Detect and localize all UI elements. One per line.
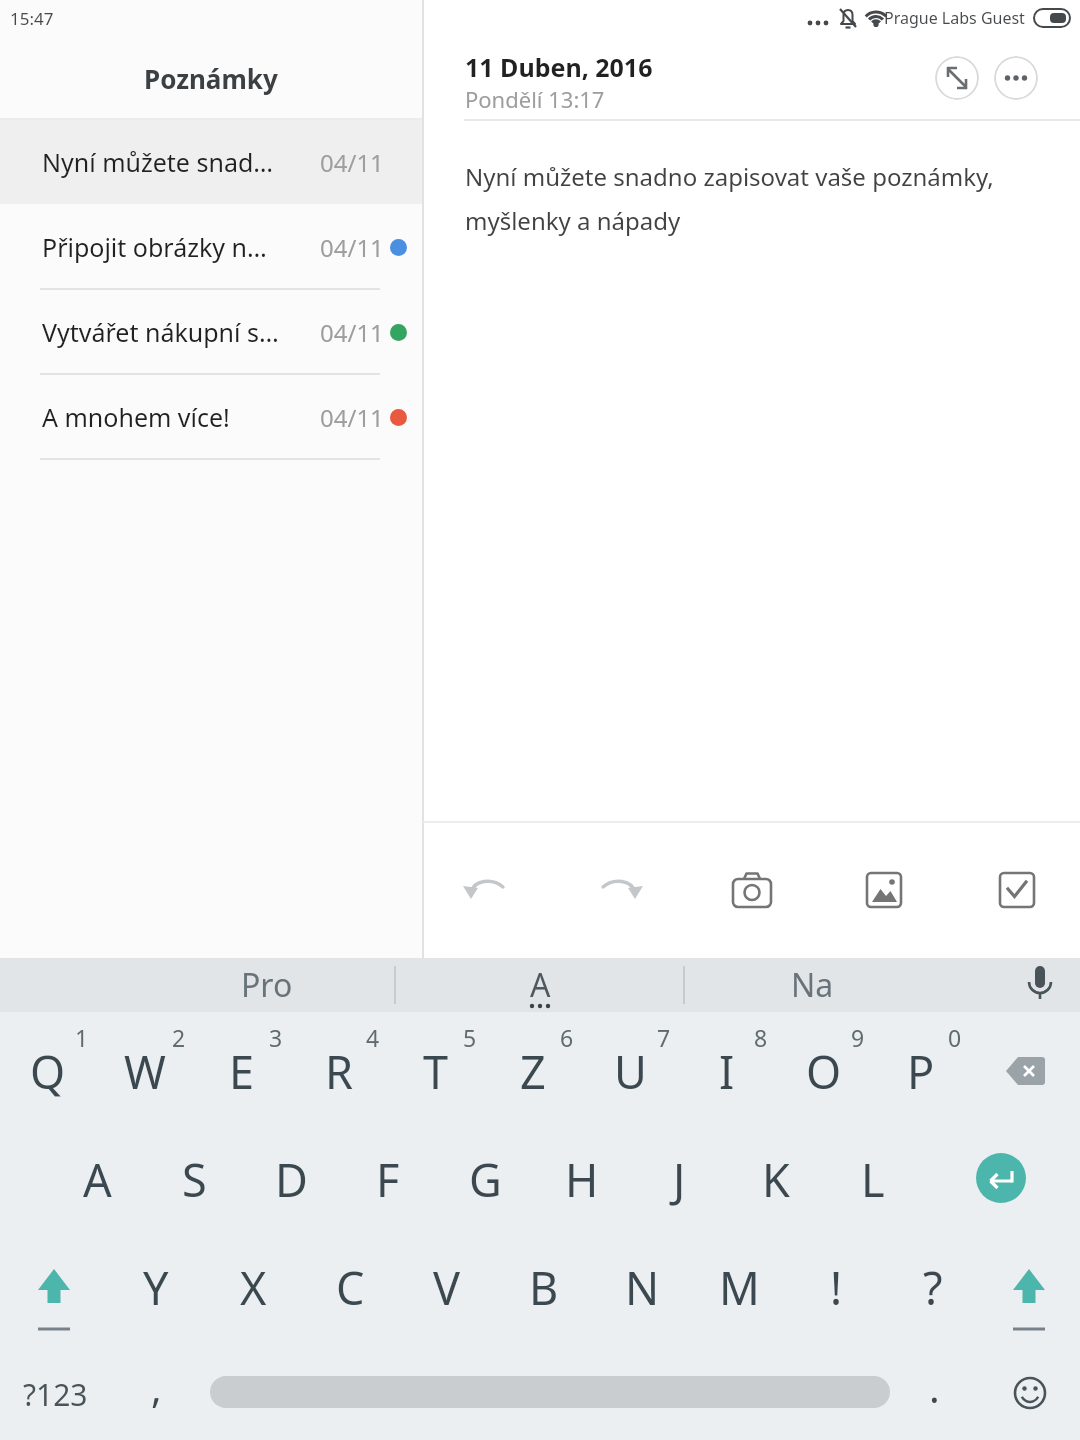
staticText: L — [861, 1149, 885, 1210]
button[interactable] — [984, 857, 1050, 923]
button[interactable]: Y — [108, 1235, 204, 1339]
staticText: 04/11 — [320, 401, 384, 434]
button[interactable]: W — [97, 1019, 193, 1123]
button[interactable]: Nyní můžete snadno zapisovat vaše — [0, 120, 422, 204]
button[interactable]: Na — [725, 962, 899, 1008]
staticText: N — [625, 1257, 660, 1318]
staticText: M — [719, 1257, 760, 1318]
staticText: F — [376, 1149, 400, 1210]
staticText: 15:47 — [10, 7, 54, 30]
button[interactable]: E — [194, 1019, 290, 1123]
staticText: A — [83, 1149, 112, 1210]
staticText: 2 — [172, 1022, 186, 1052]
button[interactable]: J — [631, 1127, 727, 1231]
staticText: Vytvářet nákupní seznamy a — [42, 315, 280, 349]
button[interactable] — [985, 1348, 1075, 1438]
button[interactable]: A — [453, 962, 627, 1008]
button[interactable] — [976, 1153, 1026, 1203]
staticText: 04/11 — [320, 316, 384, 349]
staticText: 0 — [948, 1022, 962, 1052]
staticText: ! — [830, 1257, 843, 1318]
button[interactable]: H — [534, 1127, 630, 1231]
button[interactable] — [980, 1026, 1070, 1116]
staticText: Prague Labs Guest — [884, 7, 1025, 29]
button[interactable]: Z — [485, 1019, 581, 1123]
staticText: Připojit obrázky nebo zvukové — [42, 230, 280, 264]
button[interactable]: G — [437, 1127, 533, 1231]
button[interactable]: U — [582, 1019, 678, 1123]
button[interactable]: S — [146, 1127, 242, 1231]
button[interactable]: I — [679, 1019, 775, 1123]
staticText: O — [806, 1041, 842, 1102]
staticText: K — [762, 1149, 790, 1210]
button[interactable] — [851, 857, 917, 923]
button[interactable]: Pro — [180, 962, 354, 1008]
button[interactable]: L — [825, 1127, 921, 1231]
staticText: G — [469, 1149, 502, 1210]
staticText: P — [907, 1041, 935, 1102]
staticText: Pondělí 13:17 — [465, 84, 605, 110]
button[interactable] — [454, 857, 520, 923]
button[interactable]: O — [776, 1019, 872, 1123]
staticText: A — [530, 963, 551, 1007]
button[interactable] — [210, 1376, 890, 1408]
staticText: 04/11 — [320, 231, 384, 264]
button[interactable]: C — [302, 1235, 398, 1339]
staticText: R — [325, 1041, 353, 1102]
staticText: J — [673, 1149, 686, 1210]
staticText: C — [336, 1257, 365, 1318]
staticText: Poznámky — [144, 61, 278, 96]
button[interactable]: F — [340, 1127, 436, 1231]
button[interactable]: P — [873, 1019, 969, 1123]
staticText: I — [719, 1041, 735, 1102]
button[interactable]: X — [205, 1235, 301, 1339]
button[interactable]: , — [111, 1358, 201, 1416]
button[interactable]: R — [291, 1019, 387, 1123]
staticText: ?123 — [23, 1374, 88, 1415]
button[interactable]: Připojit obrázky nebo zvukové — [0, 205, 422, 289]
staticText: E — [229, 1041, 255, 1102]
staticText: V — [433, 1257, 461, 1318]
button[interactable]: ?123 — [10, 1372, 100, 1416]
button[interactable] — [1016, 960, 1064, 1010]
staticText: 3 — [269, 1022, 283, 1052]
button[interactable] — [994, 56, 1038, 100]
staticText: H — [565, 1149, 599, 1210]
staticText: ? — [923, 1257, 943, 1318]
button[interactable]: N — [594, 1235, 690, 1339]
button[interactable]: T — [388, 1019, 484, 1123]
staticText: 8 — [754, 1022, 768, 1052]
button[interactable]: V — [399, 1235, 495, 1339]
staticText: , — [151, 1360, 162, 1414]
button[interactable]: . — [889, 1358, 979, 1416]
button[interactable]: D — [243, 1127, 339, 1231]
staticText: Na — [791, 963, 834, 1007]
button[interactable] — [935, 56, 979, 100]
staticText: T — [423, 1041, 449, 1102]
staticText: A mnohem více! — [42, 400, 230, 434]
button[interactable] — [586, 857, 652, 923]
button[interactable] — [719, 857, 785, 923]
button[interactable] — [9, 1242, 99, 1332]
button[interactable] — [984, 1242, 1074, 1332]
staticText: Pro — [241, 963, 293, 1007]
button[interactable]: ! — [788, 1235, 884, 1339]
button[interactable]: M — [691, 1235, 787, 1339]
button[interactable]: A — [49, 1127, 145, 1231]
staticText: Nyní můžete snadno zapisovat vaše — [42, 145, 280, 179]
button[interactable]: ? — [885, 1235, 981, 1339]
staticText: X — [240, 1257, 267, 1318]
button[interactable]: K — [728, 1127, 824, 1231]
button[interactable]: B — [496, 1235, 592, 1339]
staticText: 11 Duben, 2016 — [465, 50, 653, 84]
button[interactable]: A mnohem více! — [0, 375, 422, 459]
staticText: 04/11 — [320, 146, 384, 179]
staticText: 7 — [657, 1022, 671, 1052]
staticText: 6 — [560, 1022, 574, 1052]
button[interactable]: Vytvářet nákupní seznamy a — [0, 290, 422, 374]
button[interactable]: Q — [0, 1019, 96, 1123]
staticText: D — [275, 1149, 308, 1210]
button[interactable] — [0, 120, 422, 204]
staticText: 5 — [463, 1022, 477, 1052]
staticText: U — [614, 1041, 647, 1102]
